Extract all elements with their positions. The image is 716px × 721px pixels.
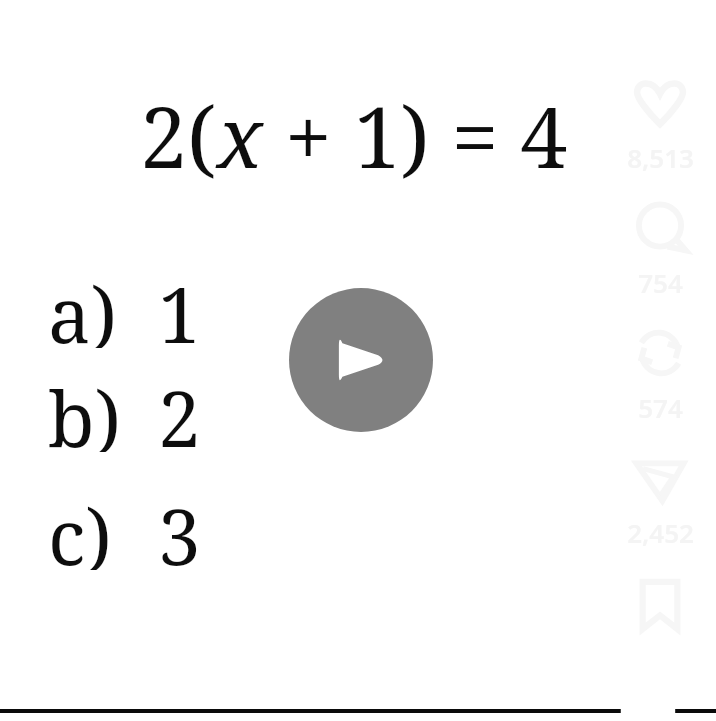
staticText: 574	[638, 390, 683, 425]
button[interactable]: Like	[612, 72, 708, 175]
staticText: c)	[48, 484, 112, 570]
button[interactable]: b)	[48, 366, 248, 452]
staticText: 754	[638, 265, 683, 300]
button[interactable]: Save	[612, 572, 708, 634]
staticText: + 1) = 4	[263, 78, 568, 192]
staticText: x	[217, 78, 263, 192]
staticText: b)	[48, 366, 121, 452]
staticText: 2(	[140, 78, 217, 192]
button[interactable]: c)	[48, 484, 248, 570]
staticText: 8,513	[627, 140, 694, 175]
button[interactable]: a)	[48, 262, 248, 348]
staticText: 1	[158, 262, 201, 348]
button[interactable]: Share	[612, 447, 708, 550]
staticText: 2	[158, 366, 201, 452]
staticText: 3	[158, 484, 201, 570]
staticText: a)	[48, 262, 118, 348]
button[interactable]: Comments	[612, 197, 708, 300]
staticText: 2,452	[627, 515, 694, 550]
button[interactable]: Play	[289, 288, 433, 432]
